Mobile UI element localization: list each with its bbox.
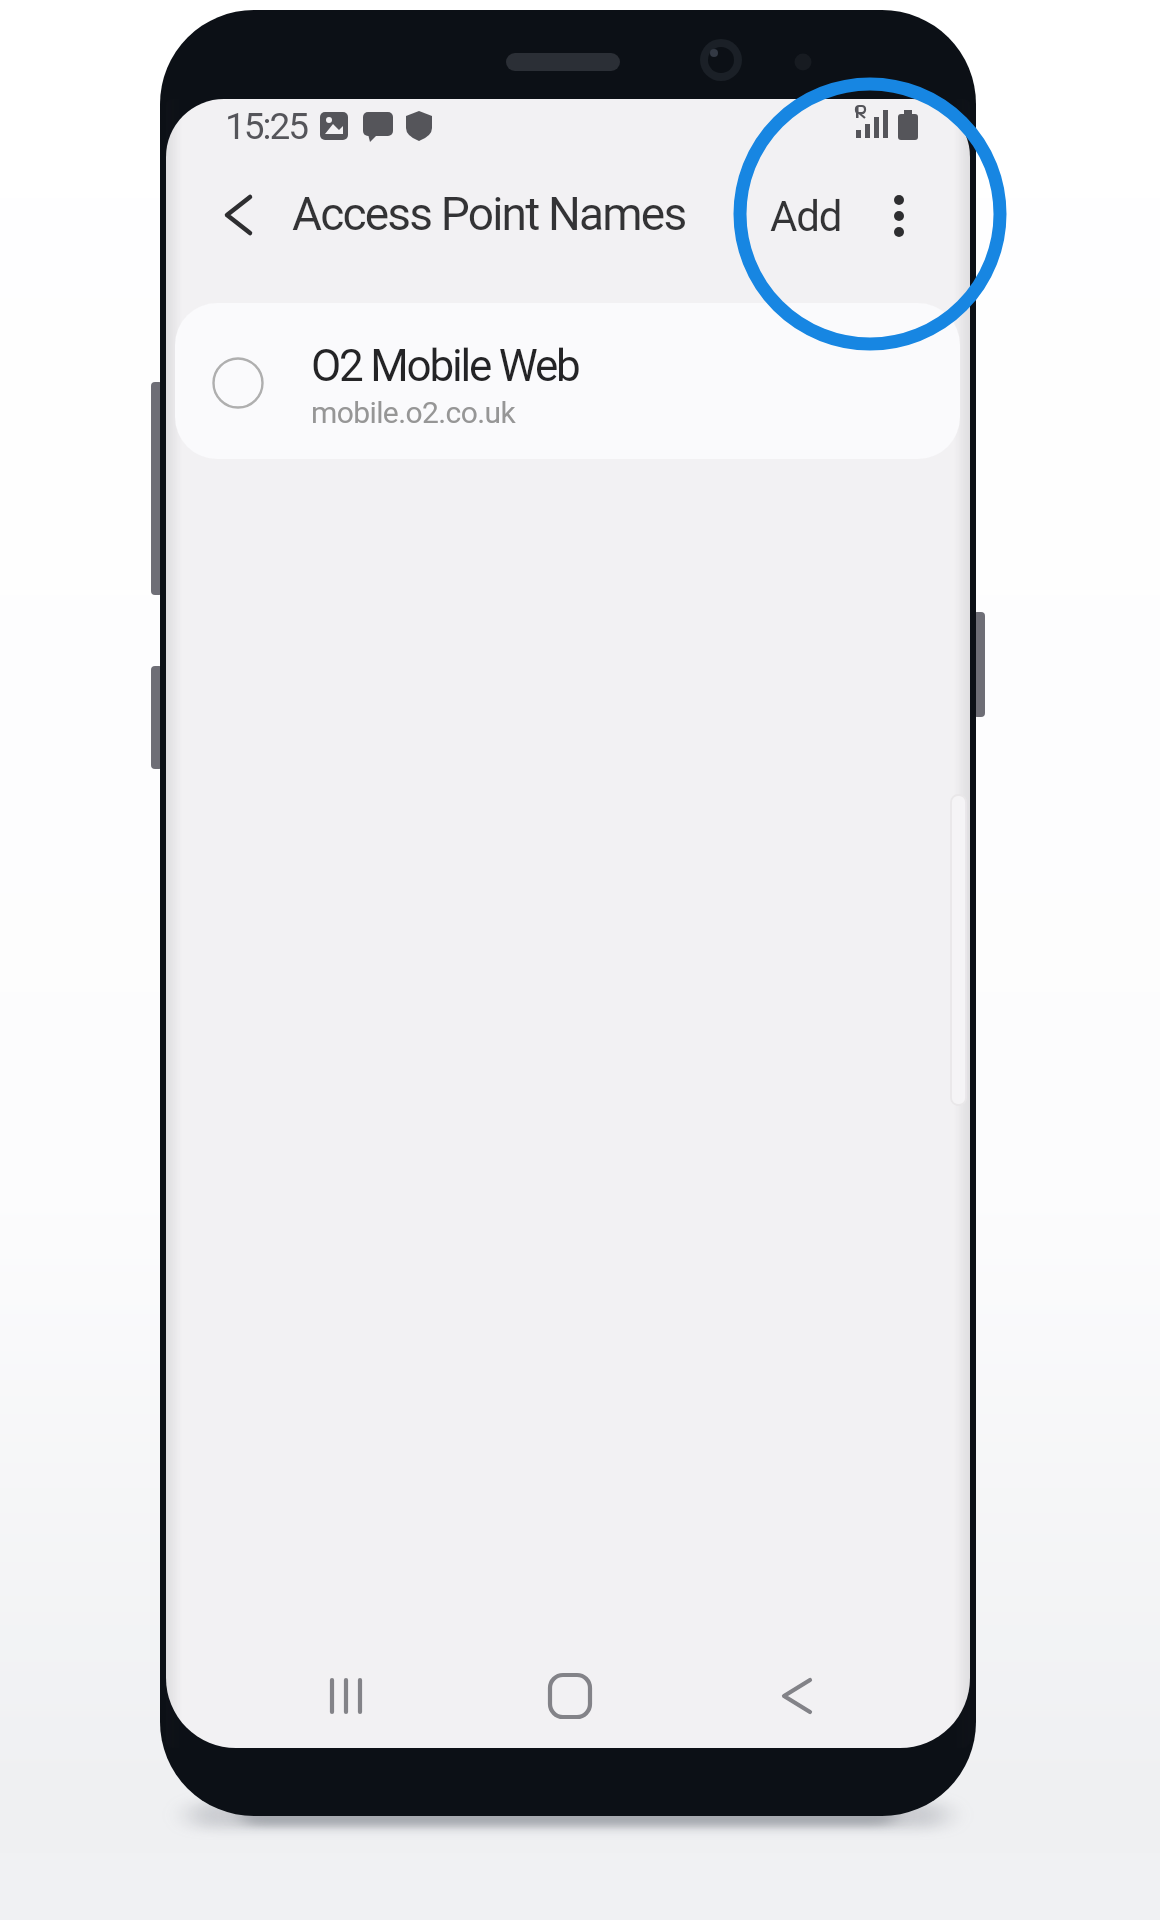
staticText: mobile.o2.co.uk [311, 395, 516, 430]
button[interactable] [866, 178, 932, 254]
button[interactable] [204, 180, 272, 250]
button[interactable] [740, 1655, 860, 1735]
staticText: Add [770, 192, 842, 241]
staticText: O2 Mobile Web [311, 340, 579, 392]
button[interactable]: O2 Mobile Web [175, 303, 960, 459]
button[interactable]: Add [756, 180, 852, 252]
staticText: Access Point Names [292, 187, 686, 241]
button[interactable] [290, 1655, 410, 1735]
staticText: 15:25 [225, 105, 308, 148]
button[interactable] [510, 1655, 630, 1735]
